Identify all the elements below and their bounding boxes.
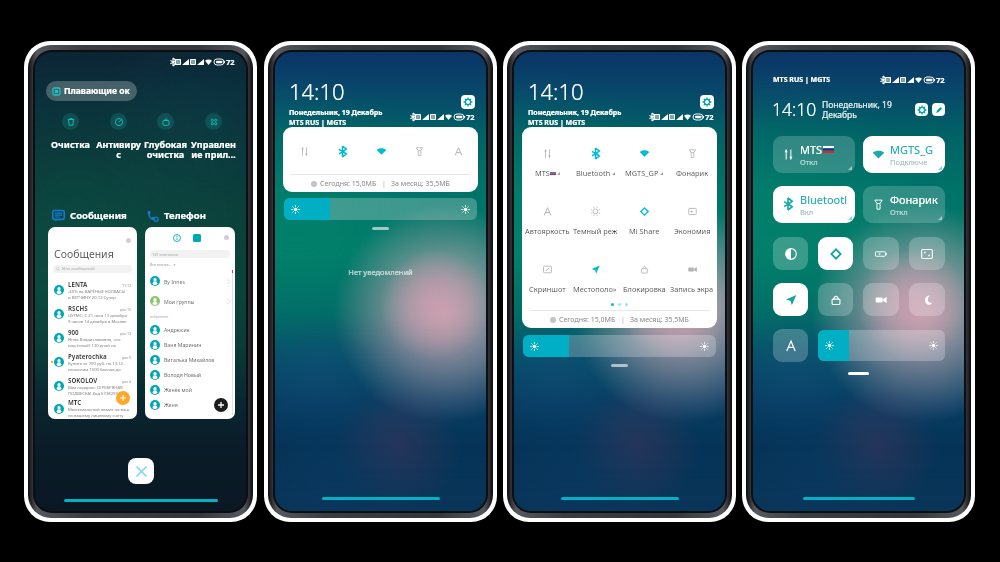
staticText: Ву Innes [164,278,227,285]
staticText: Сегодня: 15,0МБ [320,179,377,189]
button[interactable]: Темный реж [571,206,619,236]
button[interactable]: Местополо» [571,264,619,294]
button[interactable]: Contrast [773,237,808,270]
staticText: Подключе [890,157,928,167]
button[interactable]: Виталька Михайлов [150,352,230,367]
button[interactable]: Settings [461,95,475,109]
button[interactable]: Фонарик [863,186,945,223]
button[interactable]: Или сообщений [53,265,132,273]
staticText: Фонарик [890,192,938,207]
button[interactable]: Location [773,283,808,316]
button[interactable]: Bluetooth [571,148,619,178]
button[interactable]: Ваня Маринин [150,337,230,352]
button[interactable]: Скриншот [523,264,571,294]
button[interactable]: SOKOLOV [51,374,132,398]
staticText: SOKOLOV [68,376,122,384]
staticText: За месяц: 35,5МБ [630,315,689,325]
button[interactable]: Settings [700,95,714,109]
button[interactable]: Очистка [47,113,94,150]
staticText: Экономия [674,226,711,236]
button[interactable] [284,198,477,220]
button[interactable]: Lock [818,283,853,316]
button[interactable]: Add contact [214,398,228,412]
button[interactable]: Мои группы [150,291,230,311]
button[interactable]: Screen record [863,283,899,316]
button[interactable] [400,146,438,157]
button[interactable]: Плавающие ок [53,81,130,101]
staticText: MTS RUS | MGTS [773,75,831,85]
button[interactable]: Close split screen [128,458,154,484]
button[interactable]: Do not disturb [909,283,945,316]
button[interactable]: Автояркость [523,206,571,236]
button[interactable]: Экономия [668,206,716,236]
button[interactable]: Cast [909,237,945,270]
staticText: Ваня Маринин [164,341,230,348]
staticText: Запись экра [670,284,714,294]
staticText: по вашему лицевому счету сос… [68,413,132,419]
button[interactable] [818,330,945,361]
button[interactable]: Володя Новый [150,367,230,382]
staticText: Плавающие ок [64,85,130,97]
button[interactable]: Андрюсик [150,322,230,337]
button[interactable]: Settings [915,103,928,116]
staticText: ЦУГМС: С 21 часа 13 декабря до [68,313,132,319]
staticText: Очистка [47,138,94,150]
button[interactable]: Запись экра [668,264,716,294]
staticText: Автояркость [525,226,570,236]
staticText: Инна Владиславовна, что [68,337,132,343]
button[interactable]: Женя [150,397,230,412]
staticText: под ёлкой? 120 дней на покупк… [68,343,132,349]
button[interactable]: Pyaterochka [51,350,132,374]
button[interactable]: Блокировка [620,264,668,294]
staticText: Женя [164,401,230,408]
staticText: Все контак… ▾ [150,262,176,267]
button[interactable] [439,146,477,157]
button[interactable]: Управление прил… [190,113,237,161]
staticText: 137 контактов [150,252,179,257]
button[interactable]: Mi Share [620,206,668,236]
staticText: и ВЕТЧИНУ 20.12 Супер Лента !… [68,295,132,301]
staticText: Понедельник, 19 Декабрь [822,99,913,120]
button[interactable]: Ву Innes [150,271,230,291]
staticText: Володя Новый [164,371,230,378]
button[interactable]: MGTS_GP [620,148,668,178]
button[interactable] [523,335,716,357]
button[interactable]: Антивирус [95,113,142,161]
button[interactable]: MGTS_G [863,136,945,173]
button[interactable]: New message [116,391,130,405]
staticText: MTS [535,168,550,178]
staticText: Скриншот [529,284,566,294]
button[interactable]: 137 контактов [150,250,230,258]
button[interactable] [362,146,400,157]
button[interactable]: MTS [773,136,855,173]
button[interactable] [285,146,323,157]
button[interactable]: Женёк мой [150,382,230,397]
button[interactable]: Bluetootl [773,186,855,223]
staticText: Вам подарок: СЕРЕБРЯНАЯ [68,385,132,391]
button[interactable] [323,146,361,157]
staticText: дек 9 [122,355,132,360]
button[interactable]: RSCHS [51,302,132,326]
staticText: 9 часов 14 декабря в Москве [68,319,132,325]
button[interactable]: 900 [51,326,132,350]
button[interactable]: Mi Share [818,237,853,270]
staticText: LENTA [68,280,122,288]
staticText: Понедельник, 19 Декабрь [289,108,383,118]
staticText: Купите от 700 руб. по 13.12 - [68,361,132,367]
staticText: 14:10 [289,76,345,106]
staticText: Мои группы [164,298,227,305]
button[interactable]: Фонарик [668,148,716,178]
button[interactable]: MTS [523,148,571,178]
button[interactable]: MTC [51,398,132,419]
staticText: За месяц: 35,5МБ [391,179,450,189]
staticText: Темный реж [573,226,618,236]
staticText: Понедельник, 19 Декабрь [528,108,622,118]
staticText: избранные [150,314,169,319]
staticText: ПОДВЕСКА! Код 67382994 до 1… [68,391,132,397]
button[interactable]: Глубокая очистка [142,113,189,161]
button[interactable]: Edit [932,103,945,116]
staticText: 14:10 [528,76,584,106]
button[interactable]: Auto brightness [773,329,808,362]
button[interactable]: Battery saver [863,237,899,270]
button[interactable]: LENTA [51,278,132,302]
